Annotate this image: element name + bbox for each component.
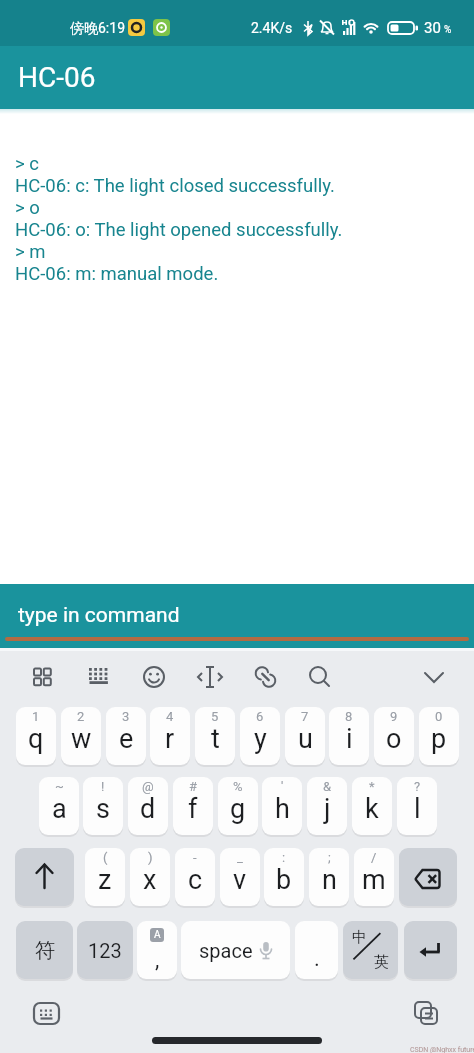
staticText: ( [103,850,108,865]
staticText: . [314,946,320,972]
button[interactable] [15,848,74,906]
button[interactable] [399,848,457,906]
staticText: a [52,793,67,825]
staticText: h [275,793,290,825]
button[interactable]: ; [309,848,349,906]
button[interactable]: 9 [374,707,414,765]
staticText: 2 [77,709,85,724]
staticText: / [371,850,377,865]
button[interactable]: ) [130,848,170,906]
button[interactable]: _ [220,848,260,906]
staticText: j [324,793,331,825]
staticText: g [230,793,246,825]
button[interactable]: 8 [329,707,369,765]
staticText: type in command [18,603,180,628]
staticText: f [188,793,198,825]
button[interactable] [133,656,175,698]
button[interactable]: 中 [343,921,398,979]
staticText: e [119,723,134,755]
button[interactable] [404,921,457,979]
button[interactable]: 2 [61,707,101,765]
staticText: o [386,723,402,755]
button[interactable] [413,656,455,698]
staticText: HC-06 [18,61,96,94]
button[interactable] [21,656,63,698]
button[interactable] [189,656,231,698]
button[interactable]: 4 [150,707,190,765]
staticText: > c HC-06: c: The light closed successfu… [15,153,343,285]
staticText: ) [148,850,153,865]
staticText: 6 [256,709,264,724]
staticText: 英 [374,953,389,972]
button[interactable]: * [352,777,392,835]
staticText: 1 [32,709,40,724]
staticText: % [233,779,243,794]
button[interactable]: - [175,848,215,906]
staticText: 5 [211,709,219,724]
staticText: p [431,723,447,755]
staticText: * [369,779,375,794]
button[interactable]: space [181,921,290,979]
button[interactable]: ? [397,777,437,835]
staticText: # [189,779,198,794]
staticText: 傍晚6:19 [70,20,125,38]
button[interactable]: # [173,777,213,835]
staticText: t [211,723,220,755]
button[interactable]: A [137,921,177,979]
button[interactable]: 5 [195,707,235,765]
staticText: u [298,723,313,755]
button[interactable]: ! [83,777,123,835]
staticText: r [165,723,175,755]
button[interactable]: . [295,921,338,979]
button[interactable]: type in command [0,584,474,648]
staticText: - [193,850,197,865]
staticText: 30 [424,19,441,37]
button[interactable] [301,656,343,698]
staticText: 中 [352,928,367,947]
staticText: x [143,864,157,896]
staticText: s [96,793,110,825]
staticText: m [362,864,386,896]
staticText: % [444,24,452,36]
staticText: q [28,723,44,755]
staticText: l [414,793,421,825]
button[interactable]: ~ [39,777,79,835]
button[interactable] [244,656,286,698]
staticText: _ [237,850,243,865]
staticText: d [140,793,156,825]
staticText: 2.4K/s [251,20,293,36]
button[interactable]: & [307,777,347,835]
button[interactable] [78,656,120,698]
staticText: c [188,864,203,896]
staticText: ; [328,850,331,865]
button[interactable]: 7 [285,707,325,765]
staticText: n [322,864,337,896]
button[interactable]: @ [128,777,168,835]
staticText: 4 [166,709,174,724]
staticText: 9 [390,709,398,724]
button[interactable]: ( [85,848,125,906]
staticText: ~ [55,779,64,794]
button[interactable]: 6 [240,707,280,765]
button[interactable] [26,993,67,1034]
button[interactable]: 3 [106,707,146,765]
button[interactable]: 符 [16,921,73,979]
button[interactable]: 1 [16,707,56,765]
staticText: & [323,779,332,794]
button[interactable] [407,993,448,1034]
staticText: y [254,723,267,755]
button[interactable]: : [264,848,304,906]
staticText: v [233,864,247,896]
button[interactable]: ' [262,777,302,835]
button[interactable]: 123 [77,921,133,979]
staticText: ! [101,779,105,794]
button[interactable]: / [354,848,394,906]
staticText: ' [281,779,284,794]
staticText: k [365,793,379,825]
button[interactable]: % [218,777,258,835]
staticText: CSDN @Nghxx futureLsz [410,1046,474,1053]
staticText: space [199,939,253,962]
staticText: 3 [122,709,130,724]
staticText: 符 [35,938,55,963]
button[interactable]: 0 [419,707,459,765]
